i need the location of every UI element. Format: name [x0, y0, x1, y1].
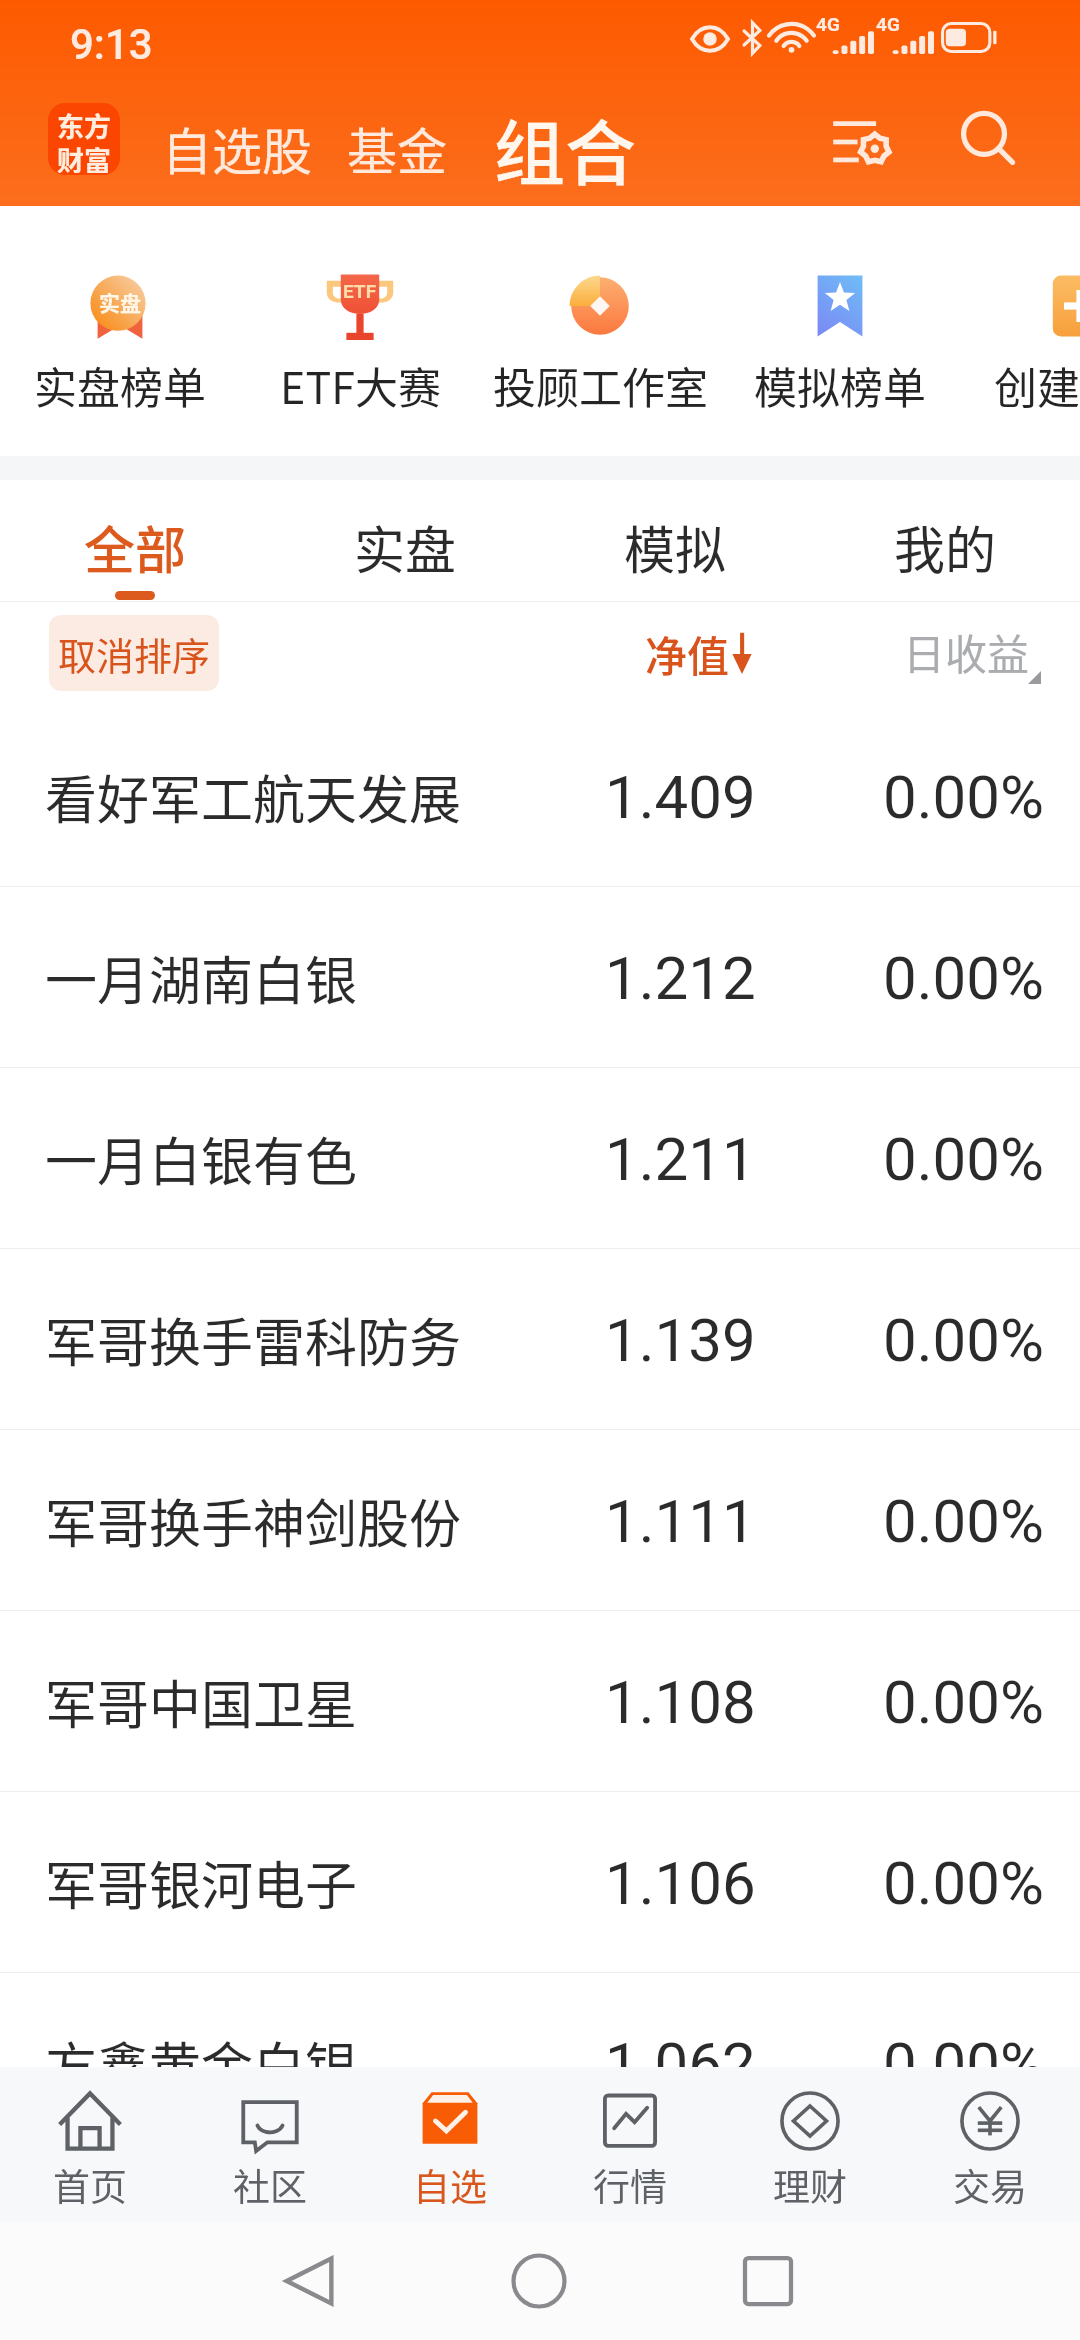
staticText: 交易: [900, 2158, 1080, 2212]
button[interactable]: 净值: [636, 611, 762, 695]
button[interactable]: 全部: [0, 480, 270, 601]
staticText: 军哥中国卫星: [45, 1664, 514, 1739]
staticText: 实盘: [99, 287, 141, 317]
staticText: 净值: [645, 623, 730, 684]
staticText: 行情: [540, 2158, 720, 2212]
staticText: 1.111: [605, 1486, 756, 1556]
staticText: 1.106: [605, 1848, 756, 1918]
button[interactable]: 实盘: [270, 480, 540, 601]
button[interactable]: 自选股: [150, 90, 324, 206]
staticText: 实盘榜单: [34, 354, 206, 416]
button[interactable]: ETF: [240, 206, 480, 456]
staticText: 1.409: [605, 762, 756, 832]
staticText: 实盘: [270, 510, 540, 584]
staticText: 1.212: [605, 943, 756, 1013]
staticText: 方鑫黄金白银: [45, 2026, 514, 2067]
staticText: 一月白银有色: [45, 1121, 514, 1196]
staticText: 4G: [876, 13, 900, 35]
staticText: 0.00%: [883, 762, 1044, 832]
staticText: 基金: [347, 112, 447, 184]
staticText: ETF: [343, 280, 377, 302]
button[interactable]: 首页: [0, 2067, 180, 2222]
staticText: 取消排序: [58, 626, 211, 681]
button[interactable]: Search: [948, 98, 1030, 182]
button[interactable]: 行情: [540, 2067, 720, 2222]
button[interactable]: 创建组合: [960, 206, 1080, 456]
staticText: 1.062: [605, 2029, 756, 2067]
staticText: 0.00%: [883, 1486, 1044, 1556]
staticText: 1.108: [605, 1667, 756, 1737]
staticText: 我的: [810, 510, 1080, 584]
button[interactable]: 一月白银有色: [0, 1068, 1080, 1249]
staticText: 4G: [816, 13, 840, 35]
button[interactable]: 军哥银河电子: [0, 1792, 1080, 1973]
staticText: 创建组合: [994, 354, 1080, 416]
button[interactable]: 基金: [335, 90, 459, 206]
staticText: 首页: [0, 2158, 180, 2212]
staticText: 理财: [720, 2158, 900, 2212]
staticText: 全部: [0, 510, 270, 584]
button[interactable]: 一月湖南白银: [0, 887, 1080, 1068]
staticText: 军哥银河电子: [45, 1845, 514, 1920]
staticText: 日收益: [903, 621, 1030, 682]
staticText: 社区: [180, 2158, 360, 2212]
staticText: 1.211: [605, 1124, 756, 1194]
staticText: 一月湖南白银: [45, 940, 514, 1015]
button[interactable]: 模拟: [540, 480, 810, 601]
staticText: 0.00%: [883, 1848, 1044, 1918]
staticText: 模拟: [540, 510, 810, 584]
staticText: 组合: [494, 97, 637, 200]
button[interactable]: 实盘: [0, 206, 240, 456]
staticText: ETF大赛: [280, 354, 441, 416]
button[interactable]: 日收益: [893, 611, 1053, 695]
button[interactable]: 方鑫黄金白银: [0, 1973, 1080, 2067]
button[interactable]: Recents: [688, 2222, 848, 2340]
staticText: 模拟榜单: [754, 354, 926, 416]
staticText: 军哥换手雷科防务: [45, 1302, 514, 1377]
button[interactable]: 看好军工航天发展: [0, 706, 1080, 887]
button[interactable]: 军哥换手神剑股份: [0, 1430, 1080, 1611]
button[interactable]: 军哥换手雷科防务: [0, 1249, 1080, 1430]
staticText: 投顾工作室: [493, 354, 708, 416]
button[interactable]: Settings: [820, 102, 904, 182]
button[interactable]: 模拟榜单: [720, 206, 960, 456]
staticText: 0.00%: [883, 1305, 1044, 1375]
staticText: 看好军工航天发展: [45, 759, 514, 834]
button[interactable]: 军哥中国卫星: [0, 1611, 1080, 1792]
button[interactable]: 自选: [360, 2067, 540, 2222]
staticText: 财富: [57, 140, 111, 173]
button[interactable]: Back: [229, 2222, 389, 2340]
button[interactable]: 理财: [720, 2067, 900, 2222]
staticText: 1.139: [605, 1305, 756, 1375]
button[interactable]: 社区: [180, 2067, 360, 2222]
staticText: 0.00%: [883, 943, 1044, 1013]
staticText: 0.00%: [883, 1667, 1044, 1737]
button[interactable]: 东方财富: [48, 103, 120, 175]
button[interactable]: Home: [459, 2222, 619, 2340]
button[interactable]: 投顾工作室: [480, 206, 720, 456]
button[interactable]: 取消排序: [49, 615, 219, 691]
staticText: 0.00%: [883, 1124, 1044, 1194]
staticText: 自选: [360, 2158, 540, 2212]
button[interactable]: 组合: [482, 90, 649, 206]
staticText: 自选股: [162, 112, 312, 184]
staticText: 军哥换手神剑股份: [45, 1483, 514, 1558]
staticText: 东方: [57, 106, 111, 145]
staticText: 0.00%: [883, 2029, 1044, 2067]
staticText: 9:13: [70, 20, 153, 69]
button[interactable]: 交易: [900, 2067, 1080, 2222]
button[interactable]: 我的: [810, 480, 1080, 601]
